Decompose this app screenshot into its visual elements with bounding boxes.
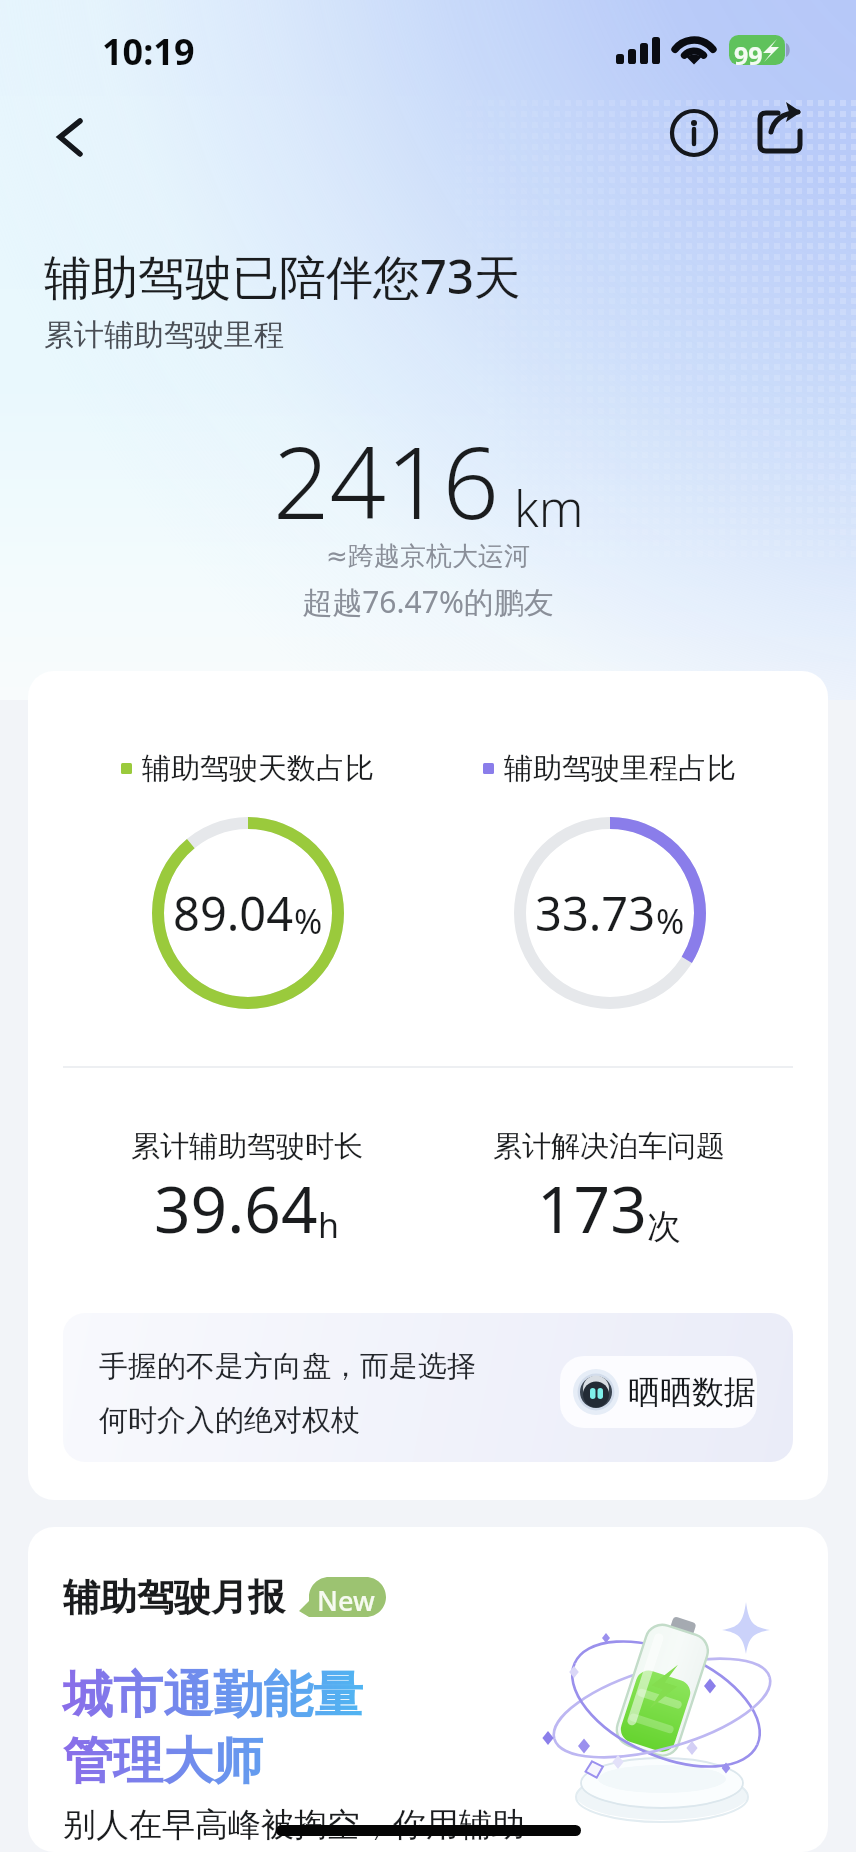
staticText: h (318, 1202, 340, 1248)
staticText: 辅助驾驶月报 (63, 1574, 285, 1621)
staticText: 累计解决泊车问题 (493, 1128, 725, 1165)
staticText: 何时介入的绝对权杖 (99, 1402, 360, 1439)
staticText: New (317, 1582, 375, 1619)
staticText: ≈跨越京杭大运河 (0, 540, 856, 573)
button[interactable]: 辅助驾驶月报 (28, 1527, 828, 1852)
button[interactable]: Share (748, 99, 816, 167)
staticText: 累计辅助驾驶里程 (44, 316, 284, 354)
staticText: 城市通勤能量 管理大师 (63, 1664, 363, 1793)
staticText: 晒晒数据 (628, 1372, 756, 1412)
staticText: % (656, 898, 685, 944)
staticText: 10:19 (102, 27, 195, 76)
staticText: km (514, 474, 584, 542)
staticText: 2416 (273, 413, 500, 548)
staticText: 超越76.47%的鹏友 (0, 581, 856, 622)
staticText: 89.04 (173, 881, 294, 945)
staticText: 33.73 (535, 881, 656, 945)
button[interactable]: 晒晒数据 (560, 1356, 757, 1428)
staticText: 辅助驾驶天数占比 (142, 750, 374, 787)
staticText: % (294, 898, 323, 944)
staticText: 累计辅助驾驶时长 (131, 1128, 363, 1165)
staticText: 次 (647, 1205, 681, 1248)
button[interactable]: Back (30, 91, 96, 157)
button[interactable]: Info (660, 99, 728, 167)
staticText: 辅助驾驶里程占比 (504, 750, 736, 787)
staticText: 173 (537, 1165, 647, 1252)
staticText: 99 (734, 38, 763, 72)
staticText: 别人在早高峰被掏空，你用辅助 (63, 1804, 525, 1846)
staticText: 39.64 (154, 1165, 318, 1252)
staticText: 辅助驾驶已陪伴您73天 (44, 244, 521, 308)
staticText: 手握的不是方向盘，而是选择 (99, 1348, 476, 1385)
